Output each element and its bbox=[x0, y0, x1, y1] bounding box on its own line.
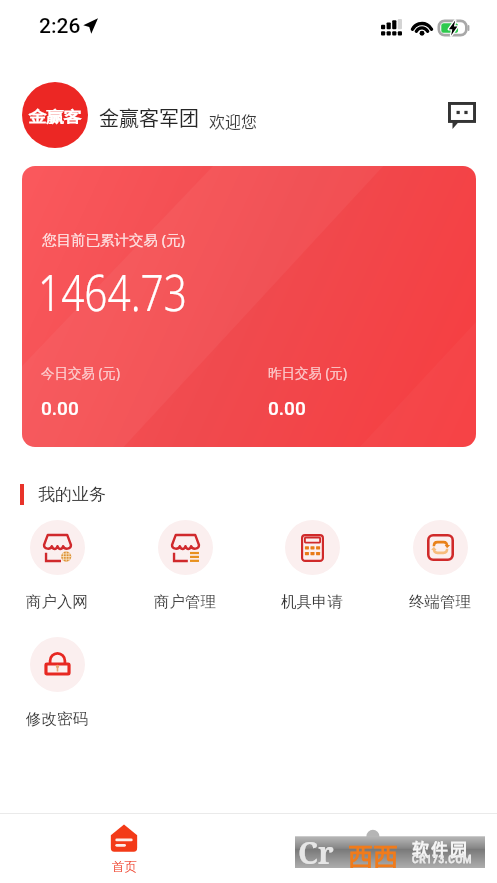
staticText: 昨日交易 (元) bbox=[268, 364, 348, 382]
staticText: 我的业务 bbox=[38, 484, 106, 505]
staticText: 商户入网 bbox=[26, 592, 88, 610]
staticText: 您目前已累计交易 (元) bbox=[42, 229, 185, 249]
staticText: 商户管理 bbox=[154, 592, 216, 610]
button[interactable]: 修改密码 bbox=[0, 637, 117, 727]
staticText: 机具申请 bbox=[281, 592, 343, 610]
button[interactable]: 商户管理 bbox=[125, 520, 245, 610]
staticText: 欢迎您 bbox=[209, 109, 258, 132]
staticText: 1464.73 bbox=[38, 258, 188, 325]
staticText: 今日交易 (元) bbox=[41, 364, 121, 382]
staticText: 金赢客军团 bbox=[99, 103, 199, 132]
staticText: 终端管理 bbox=[409, 592, 471, 610]
button[interactable]: 终端管理 bbox=[380, 520, 497, 610]
button[interactable]: Messages bbox=[440, 93, 484, 137]
button[interactable]: 您目前已累计交易 (元) bbox=[22, 166, 476, 447]
staticText: 0.00 bbox=[41, 397, 79, 419]
button[interactable]: 机具申请 bbox=[252, 520, 372, 610]
staticText: Cr bbox=[298, 832, 334, 868]
staticText: 首页 bbox=[112, 859, 137, 875]
staticText: 2:26 bbox=[39, 14, 81, 39]
staticText: 金赢客 bbox=[29, 105, 81, 127]
staticText: 软件园 bbox=[412, 836, 469, 861]
staticText: 0.00 bbox=[268, 397, 306, 419]
button[interactable]: 商户入网 bbox=[0, 520, 117, 610]
staticText: 西西 bbox=[348, 837, 399, 868]
staticText: CR173.COM bbox=[412, 854, 473, 866]
staticText: 修改密码 bbox=[26, 709, 88, 727]
button[interactable]: 首页 bbox=[110, 824, 138, 875]
